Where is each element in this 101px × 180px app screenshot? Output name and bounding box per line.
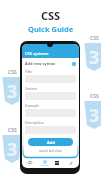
button[interactable]: cancel and close (25, 149, 76, 153)
staticText: Section (25, 86, 38, 91)
staticText: Description (25, 120, 44, 125)
staticText: 3 (7, 137, 18, 162)
staticText: CSS (90, 93, 99, 100)
button[interactable]: Browse (24, 157, 36, 168)
button[interactable]: Info (72, 62, 76, 66)
button[interactable]: Library (51, 157, 63, 168)
staticText: Quick Guide (28, 24, 74, 34)
staticText: Title (25, 69, 32, 74)
button[interactable]: Edit (65, 157, 77, 168)
staticText: CSS (8, 127, 17, 134)
button[interactable]: Add (28, 138, 73, 146)
staticText: CSS (90, 35, 99, 42)
staticText: CSS systems (25, 51, 49, 56)
staticText: Example (25, 103, 40, 108)
staticText: 3 (89, 45, 100, 70)
staticText: Add new syntax (25, 61, 56, 66)
staticText: 3 (7, 79, 18, 104)
staticText: CSS (41, 8, 61, 23)
staticText: Add (47, 140, 55, 145)
staticText: 3 (89, 103, 100, 128)
button[interactable]: Add new (38, 157, 50, 168)
staticText: CSS (8, 69, 17, 76)
